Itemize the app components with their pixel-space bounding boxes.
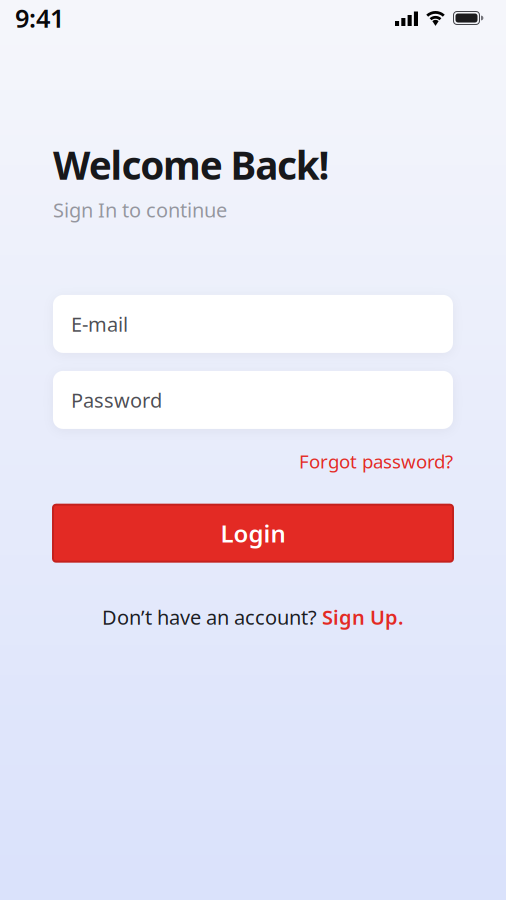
button[interactable]: E-mail [53, 295, 453, 353]
staticText: Sign Up. [322, 604, 404, 630]
button[interactable]: Forgot password? [299, 449, 453, 474]
staticText: Forgot password? [299, 449, 453, 474]
button[interactable]: Sign Up. [322, 604, 404, 630]
staticText: Don’t have an account? [102, 604, 322, 630]
staticText: Password [71, 387, 162, 413]
staticText: Sign In to continue [53, 196, 227, 223]
staticText: Welcome Back! [53, 139, 330, 190]
button[interactable]: Password [53, 371, 453, 429]
staticText: 9:41 [15, 1, 64, 35]
staticText: E-mail [71, 311, 128, 337]
staticText: Login [220, 517, 285, 549]
button[interactable]: Login [53, 505, 453, 562]
